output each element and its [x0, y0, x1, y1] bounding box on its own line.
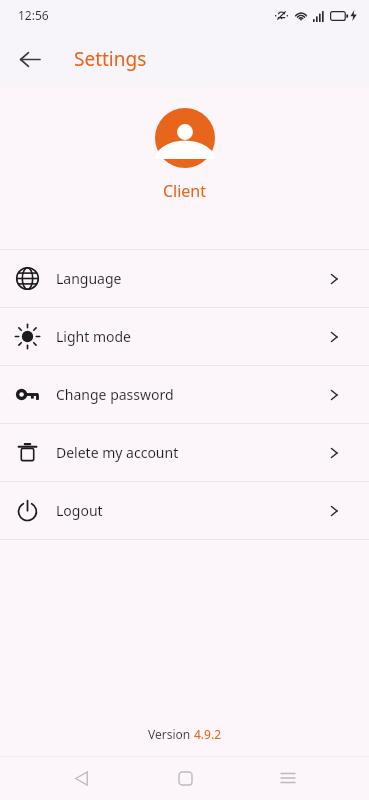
staticText: Change password	[56, 385, 174, 404]
button[interactable]: Logout	[0, 482, 369, 539]
staticText: Light mode	[56, 327, 131, 346]
staticText: 4.9.2	[194, 726, 222, 742]
button[interactable]: Recent apps	[266, 756, 310, 800]
button[interactable]: Change password	[0, 366, 369, 423]
button[interactable]: Back	[10, 40, 48, 78]
button[interactable]: Light mode	[0, 308, 369, 365]
button[interactable]: Home	[163, 756, 207, 800]
staticText: Version	[148, 726, 194, 742]
staticText: Language	[56, 269, 122, 288]
staticText: 12:56	[18, 7, 49, 23]
staticText: Client	[0, 180, 369, 202]
button[interactable]: Back	[59, 756, 103, 800]
staticText: Delete my account	[56, 443, 179, 462]
staticText: Logout	[56, 501, 103, 520]
button[interactable]: Delete my account	[0, 424, 369, 481]
staticText: Settings	[74, 46, 147, 72]
button[interactable]: Language	[0, 250, 369, 307]
